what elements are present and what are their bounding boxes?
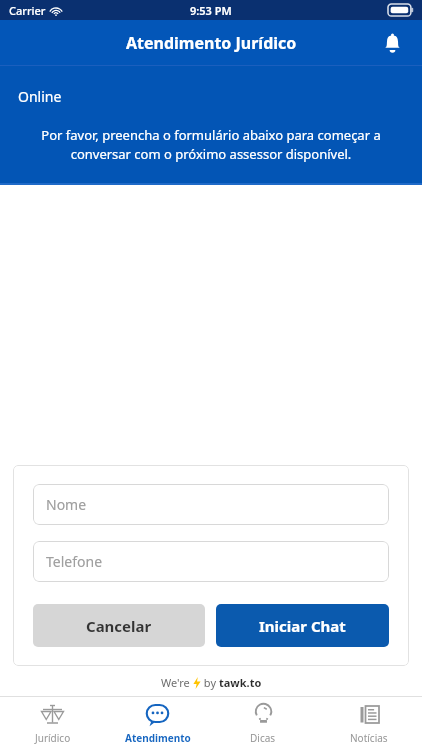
button[interactable]: Atendimento bbox=[105, 697, 210, 750]
staticText: 9:53 PM bbox=[190, 3, 232, 18]
staticText: Notícias bbox=[350, 731, 388, 745]
button[interactable]: Nome bbox=[33, 484, 389, 525]
button[interactable]: Dicas bbox=[210, 697, 316, 750]
staticText: by bbox=[201, 675, 219, 690]
button[interactable]: Cancelar bbox=[33, 604, 205, 647]
staticText: Atendimento Jurídico bbox=[126, 32, 297, 54]
staticText: Por favor, preencha o formulário abaixo … bbox=[26, 126, 396, 163]
staticText: Carrier bbox=[9, 3, 46, 18]
staticText: Cancelar bbox=[86, 616, 152, 636]
staticText: Telefone bbox=[46, 552, 103, 571]
button[interactable]: Notificações bbox=[372, 23, 412, 63]
staticText: Atendimento bbox=[125, 731, 191, 745]
staticText: We're bbox=[161, 675, 193, 690]
staticText: Nome bbox=[46, 495, 87, 514]
button[interactable]: Telefone bbox=[33, 541, 389, 582]
button[interactable]: Iniciar Chat bbox=[216, 604, 389, 647]
staticText: Iniciar Chat bbox=[259, 616, 346, 636]
staticText: Dicas bbox=[250, 731, 276, 745]
button[interactable]: Notícias bbox=[316, 697, 422, 750]
staticText: Jurídico bbox=[35, 731, 71, 745]
staticText: tawk.to bbox=[219, 675, 262, 690]
button[interactable]: Jurídico bbox=[0, 697, 105, 750]
staticText: Online bbox=[18, 87, 62, 106]
